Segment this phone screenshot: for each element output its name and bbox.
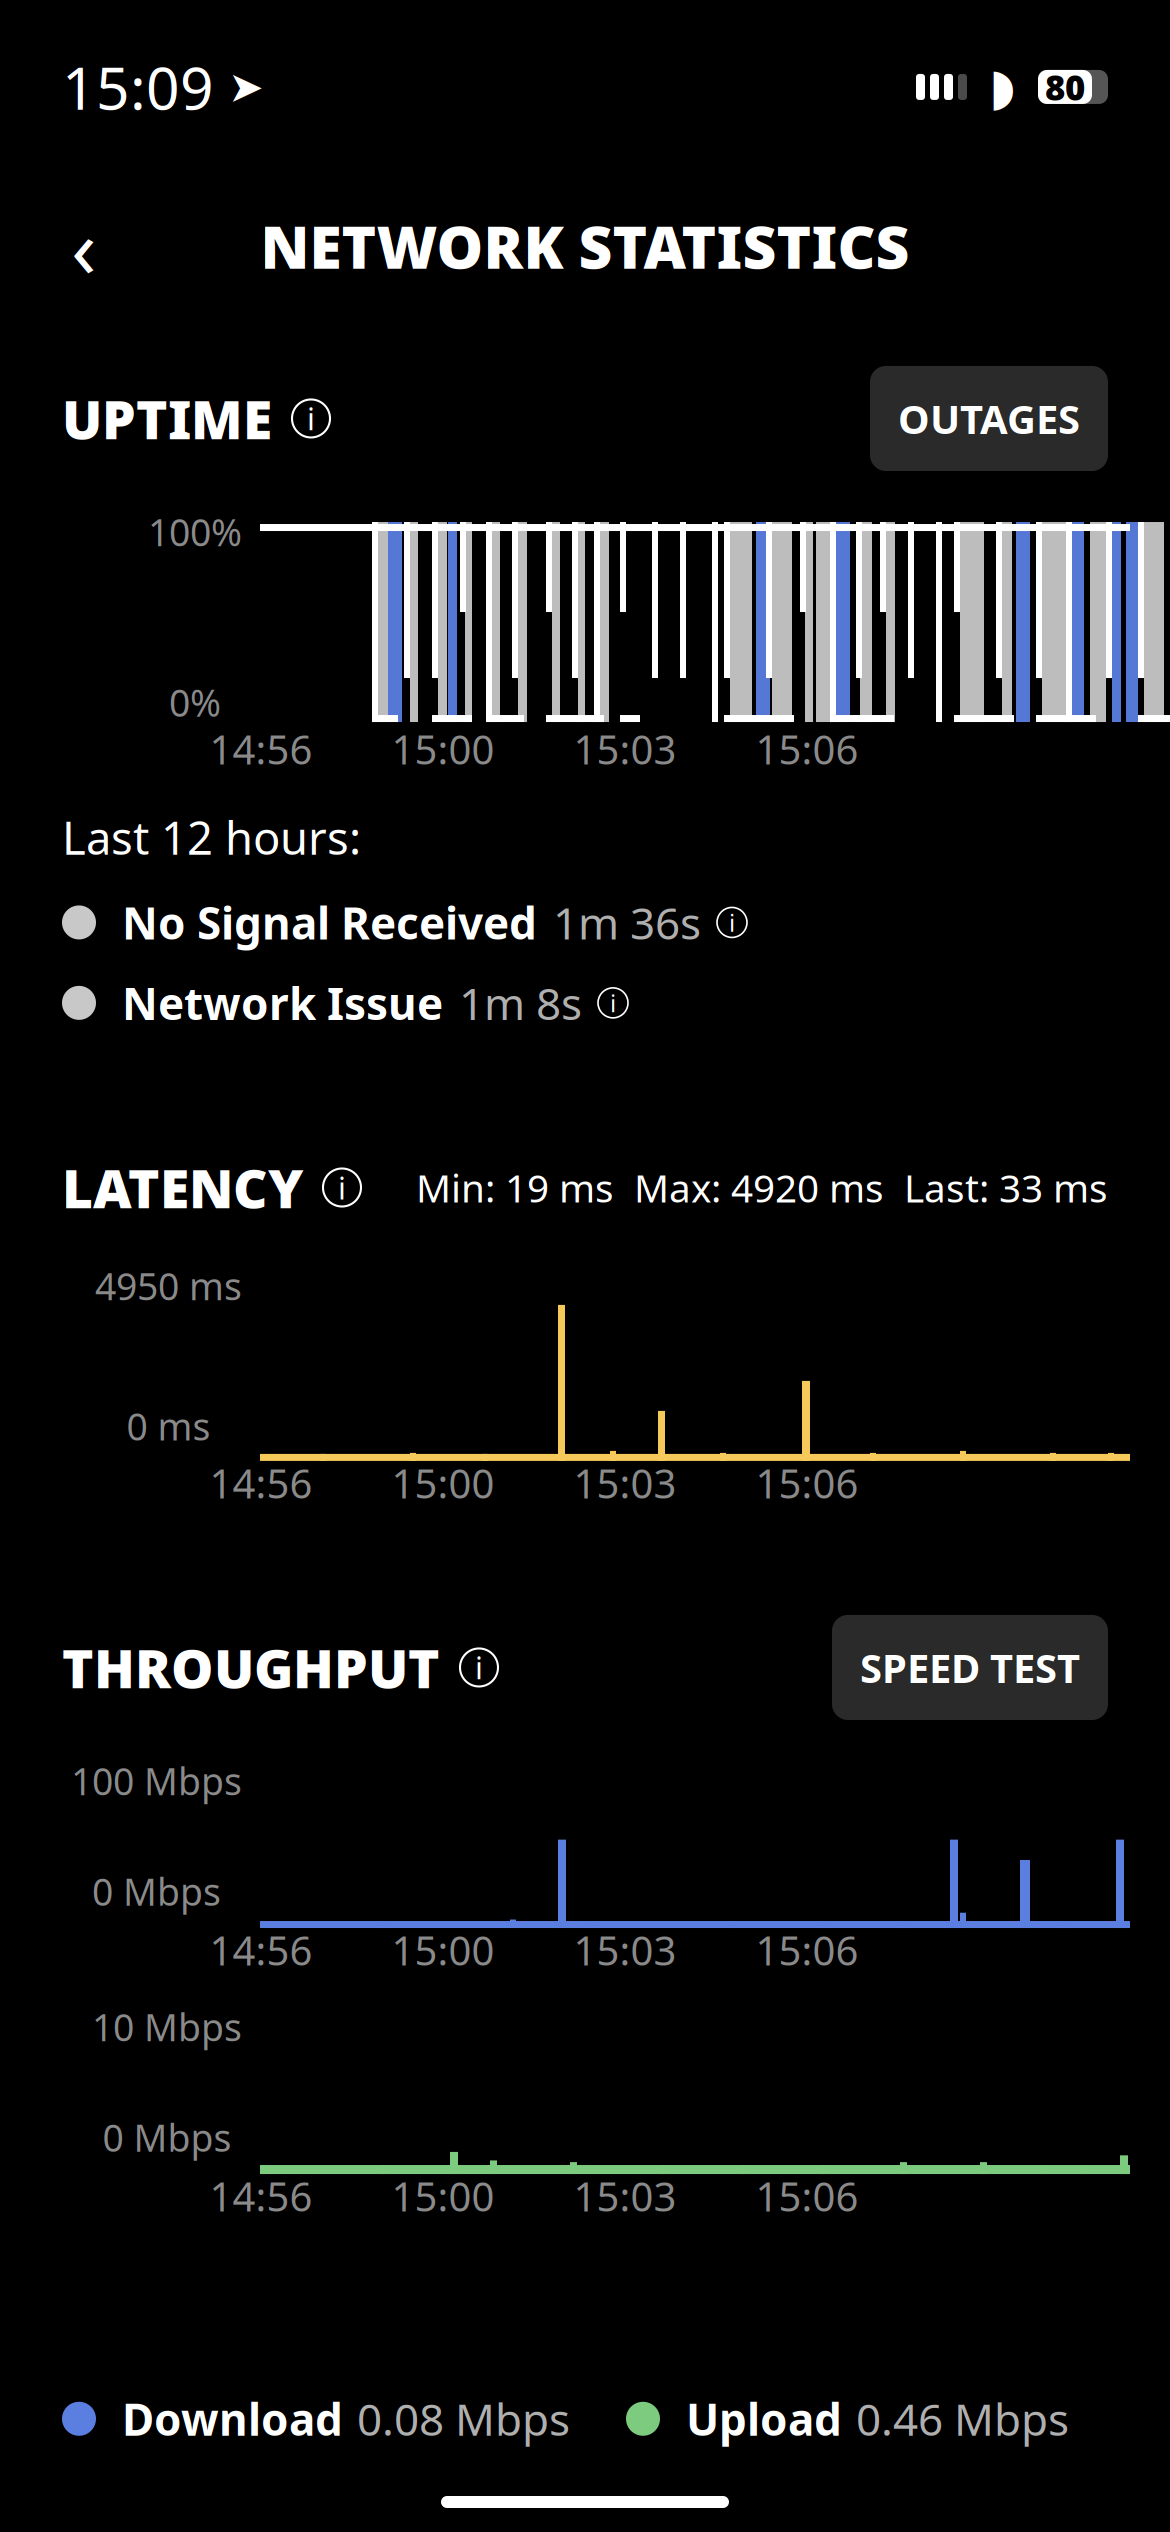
staticText: ➤: [228, 63, 264, 111]
staticText: No Signal Received: [122, 893, 537, 952]
staticText: ◗: [989, 58, 1016, 116]
staticText: 0 ms: [126, 1401, 210, 1451]
staticText: 0%: [169, 677, 221, 727]
staticText: 15:06: [755, 722, 858, 776]
staticText: Network Issue: [122, 974, 443, 1032]
staticText: 15:06: [755, 2169, 858, 2223]
staticText: 10 Mbps: [92, 2002, 242, 2052]
staticText: 100 Mbps: [71, 1756, 242, 1806]
staticText: THROUGHPUT: [62, 1632, 440, 1703]
staticText: 80: [1045, 64, 1085, 110]
staticText: i: [338, 1167, 346, 1208]
staticText: Min: 19 ms Max: 4920 ms Last: 33 ms: [416, 1162, 1108, 1213]
staticText: 15:00: [391, 2169, 494, 2223]
button[interactable]: About UPTIME: [292, 399, 330, 437]
button[interactable]: SPEED TEST: [832, 1615, 1108, 1720]
staticText: ‹: [71, 191, 97, 301]
staticText: i: [610, 987, 616, 1019]
staticText: 14:56: [209, 1456, 312, 1509]
staticText: UPTIME: [62, 383, 272, 454]
staticText: 15:09: [62, 48, 214, 126]
staticText: 15:06: [755, 1456, 858, 1509]
staticText: Upload: [686, 2390, 842, 2448]
staticText: LATENCY: [62, 1152, 303, 1223]
staticText: i: [307, 398, 315, 439]
staticText: SPEED TEST: [860, 1641, 1080, 1694]
staticText: 14:56: [209, 1923, 312, 1977]
staticText: Last 12 hours:: [62, 807, 361, 867]
staticText: 4950 ms: [95, 1261, 242, 1310]
button[interactable]: About Network Issue: [598, 988, 628, 1018]
button[interactable]: About No Signal Received: [717, 907, 747, 937]
staticText: 0.46 Mbps: [856, 2390, 1069, 2448]
staticText: 15:00: [391, 1456, 494, 1509]
button[interactable]: About LATENCY: [323, 1168, 361, 1206]
staticText: 14:56: [209, 2169, 312, 2223]
button[interactable]: OUTAGES: [870, 366, 1108, 471]
button[interactable]: Back: [44, 206, 124, 286]
staticText: Download: [122, 2390, 343, 2448]
staticText: 0.08 Mbps: [357, 2390, 570, 2448]
staticText: 14:56: [209, 722, 312, 776]
staticText: 15:03: [573, 1923, 676, 1977]
staticText: 0 Mbps: [92, 1866, 221, 1916]
staticText: 15:00: [391, 722, 494, 776]
staticText: 1m 8s: [459, 974, 582, 1032]
staticText: i: [475, 1647, 483, 1688]
staticText: 15:03: [573, 722, 676, 776]
staticText: NETWORK STATISTICS: [260, 207, 909, 285]
staticText: i: [729, 906, 735, 938]
staticText: 15:00: [391, 1923, 494, 1977]
staticText: 15:03: [573, 2169, 676, 2223]
staticText: 15:06: [755, 1923, 858, 1977]
button[interactable]: About THROUGHPUT: [460, 1648, 498, 1686]
staticText: 15:03: [573, 1456, 676, 1509]
staticText: 1m 36s: [553, 893, 701, 952]
staticText: 100%: [148, 507, 242, 557]
staticText: 0 Mbps: [102, 2112, 231, 2162]
staticText: OUTAGES: [898, 392, 1080, 445]
